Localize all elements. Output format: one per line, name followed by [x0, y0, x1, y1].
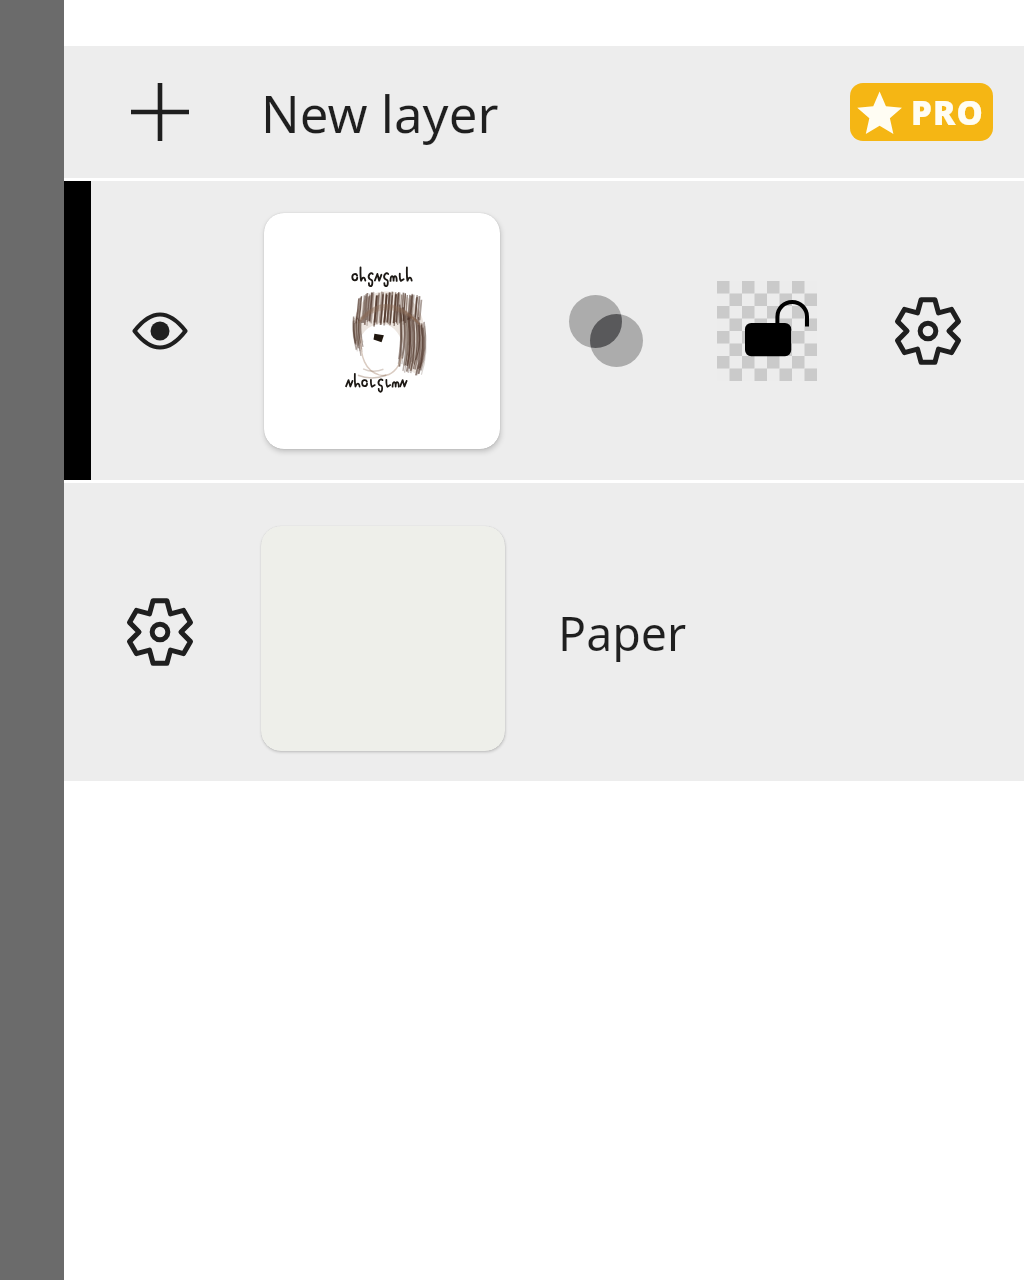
button[interactable]: Paper settings: [64, 483, 1024, 781]
staticText: PRO: [911, 90, 985, 135]
staticText: New layer: [261, 78, 499, 147]
button[interactable]: Blend mode: [566, 291, 646, 371]
button[interactable]: Toggle visibility: [64, 181, 1024, 480]
staticText: Paper: [558, 601, 687, 664]
button[interactable]: Toggle visibility: [128, 299, 192, 363]
button[interactable]: Upgrade to PRO: [850, 83, 993, 141]
button[interactable]: Lock layer: [717, 281, 817, 381]
button[interactable]: Add new layer: [64, 46, 1024, 178]
button[interactable]: Layer settings: [880, 283, 976, 379]
button[interactable]: Add new layer: [128, 80, 192, 144]
button[interactable]: Paper settings: [112, 584, 208, 680]
